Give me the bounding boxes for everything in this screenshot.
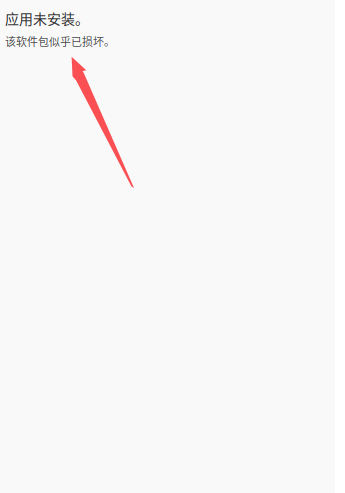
staticText: 该软件包似乎已损坏。 [5,33,115,49]
staticText: 应用未安装。 [5,8,89,28]
